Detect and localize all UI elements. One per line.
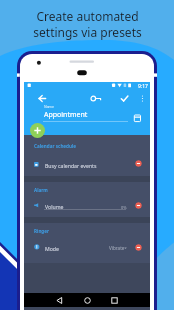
button[interactable]: Choose date	[132, 113, 143, 124]
staticText: Volume	[45, 203, 64, 210]
staticText: 0%	[121, 205, 127, 210]
button[interactable]: Back	[36, 92, 49, 105]
staticText: Appointment	[44, 110, 88, 120]
staticText: Busy calendar events	[45, 162, 97, 169]
button[interactable]: Remove	[135, 244, 142, 251]
button[interactable]: Mode	[24, 235, 150, 259]
button[interactable]: Password	[90, 92, 103, 105]
staticText: Ringer	[34, 228, 50, 234]
staticText: Calendar schedule	[34, 143, 77, 149]
staticText: Alarm	[34, 187, 48, 193]
button[interactable]: Add preset	[30, 123, 45, 138]
staticText: Name	[44, 104, 54, 109]
button[interactable]: Home	[82, 295, 93, 306]
button[interactable]: Save	[118, 92, 131, 105]
staticText: 9:17	[138, 83, 148, 90]
staticText: Vibrate	[109, 245, 125, 251]
staticText: Mode	[45, 245, 59, 252]
button[interactable]: Remove	[135, 202, 142, 209]
button[interactable]: Remove	[135, 160, 142, 167]
staticText: Create automated	[36, 8, 139, 24]
button[interactable]: Volume	[24, 194, 150, 217]
staticText: settings via presets	[33, 24, 142, 40]
button[interactable]: Recents	[109, 295, 120, 306]
button[interactable]: Busy calendar events	[24, 152, 150, 176]
button[interactable]: More options	[136, 92, 149, 105]
button[interactable]: Back	[54, 295, 65, 306]
